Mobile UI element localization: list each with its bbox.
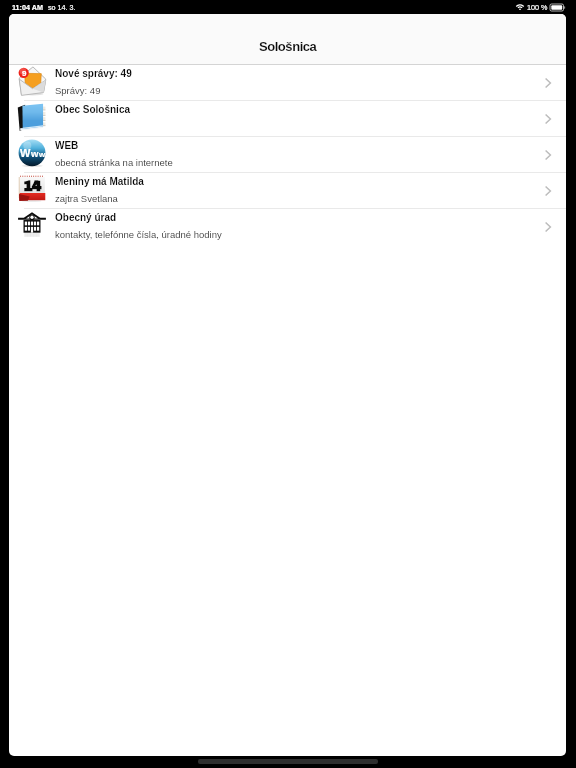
button[interactable]: Obecný úrad xyxy=(9,209,566,245)
staticText: W xyxy=(20,147,31,159)
staticText: w xyxy=(31,148,39,159)
staticText: Obec Sološnica xyxy=(55,104,131,115)
button[interactable]: 14 xyxy=(9,173,566,209)
button[interactable]: 9 xyxy=(9,65,566,101)
staticText: 14 xyxy=(23,179,41,194)
button[interactable]: Obec Sološnica xyxy=(9,101,566,137)
staticText: obecná stránka na internete xyxy=(55,157,173,168)
staticText: zajtra Svetlana xyxy=(55,193,118,204)
staticText: w xyxy=(39,150,46,159)
staticText: 11:04 AM xyxy=(12,3,43,11)
staticText: Nové správy: 49 xyxy=(55,68,132,79)
staticText: Meniny má Matilda xyxy=(55,176,144,187)
staticText: kontakty, telefónne čísla, úradné hodiny xyxy=(55,229,222,240)
staticText: so 14. 3. xyxy=(48,3,76,11)
staticText: 9 xyxy=(22,69,27,78)
staticText: Obecný úrad xyxy=(55,212,117,223)
staticText: 100 % xyxy=(527,3,548,11)
staticText: WEB xyxy=(55,140,79,151)
staticText: Sološnica xyxy=(259,39,317,54)
staticText: Správy: 49 xyxy=(55,85,101,96)
button[interactable]: W xyxy=(9,137,566,173)
